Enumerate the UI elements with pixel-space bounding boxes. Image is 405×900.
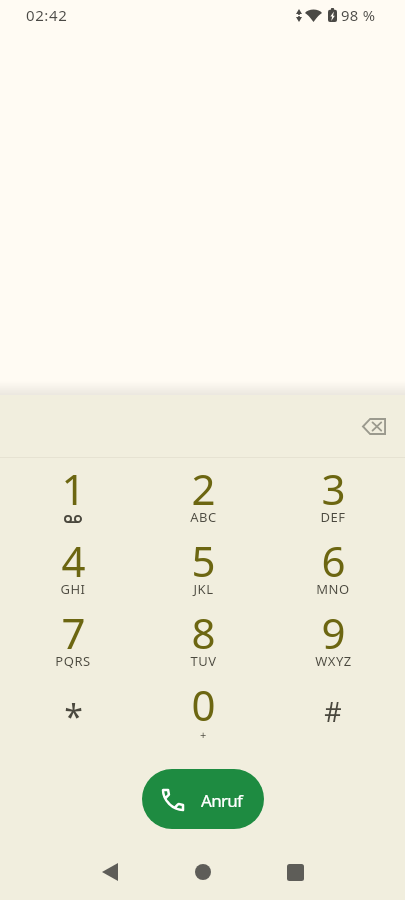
button[interactable]: 9 [268, 606, 398, 678]
staticText: 1 [61, 460, 86, 517]
staticText: 9 [321, 604, 346, 661]
button[interactable]: Home [156, 844, 249, 900]
staticText: # [324, 693, 342, 730]
staticText: * [64, 693, 83, 739]
button[interactable]: Recent apps [249, 844, 342, 900]
staticText: GHI [60, 580, 86, 598]
staticText: Anruf [201, 789, 243, 812]
staticText: 3 [321, 460, 346, 517]
button[interactable]: 7 [8, 606, 138, 678]
button[interactable]: * [8, 678, 138, 750]
button[interactable]: Backspace [350, 402, 398, 450]
staticText: MNO [316, 580, 350, 598]
staticText: 0 [191, 676, 216, 733]
staticText: 98 % [341, 5, 376, 25]
staticText: DEF [320, 508, 346, 526]
staticText: 8 [191, 604, 216, 661]
staticText: 02:42 [26, 5, 68, 25]
button[interactable]: 0 [138, 678, 268, 750]
staticText: 6 [321, 532, 346, 589]
staticText: + [200, 727, 207, 742]
staticText: ABC [190, 508, 217, 526]
button[interactable]: 8 [138, 606, 268, 678]
staticText: 5 [191, 532, 216, 589]
button[interactable]: 4 [8, 534, 138, 606]
staticText: JKL [193, 580, 214, 598]
button[interactable]: 2 [138, 462, 268, 534]
button[interactable]: 1 [8, 462, 138, 534]
staticText: 7 [61, 604, 86, 661]
button[interactable]: 5 [138, 534, 268, 606]
staticText: WXYZ [315, 652, 352, 670]
staticText: 2 [191, 460, 216, 517]
button[interactable]: 3 [268, 462, 398, 534]
staticText: 4 [61, 532, 86, 589]
button[interactable]: # [268, 678, 398, 750]
button[interactable]: Anruf [142, 769, 264, 829]
button[interactable]: 6 [268, 534, 398, 606]
button[interactable]: Back [63, 844, 156, 900]
staticText: PQRS [55, 652, 91, 670]
staticText: TUV [190, 652, 217, 670]
